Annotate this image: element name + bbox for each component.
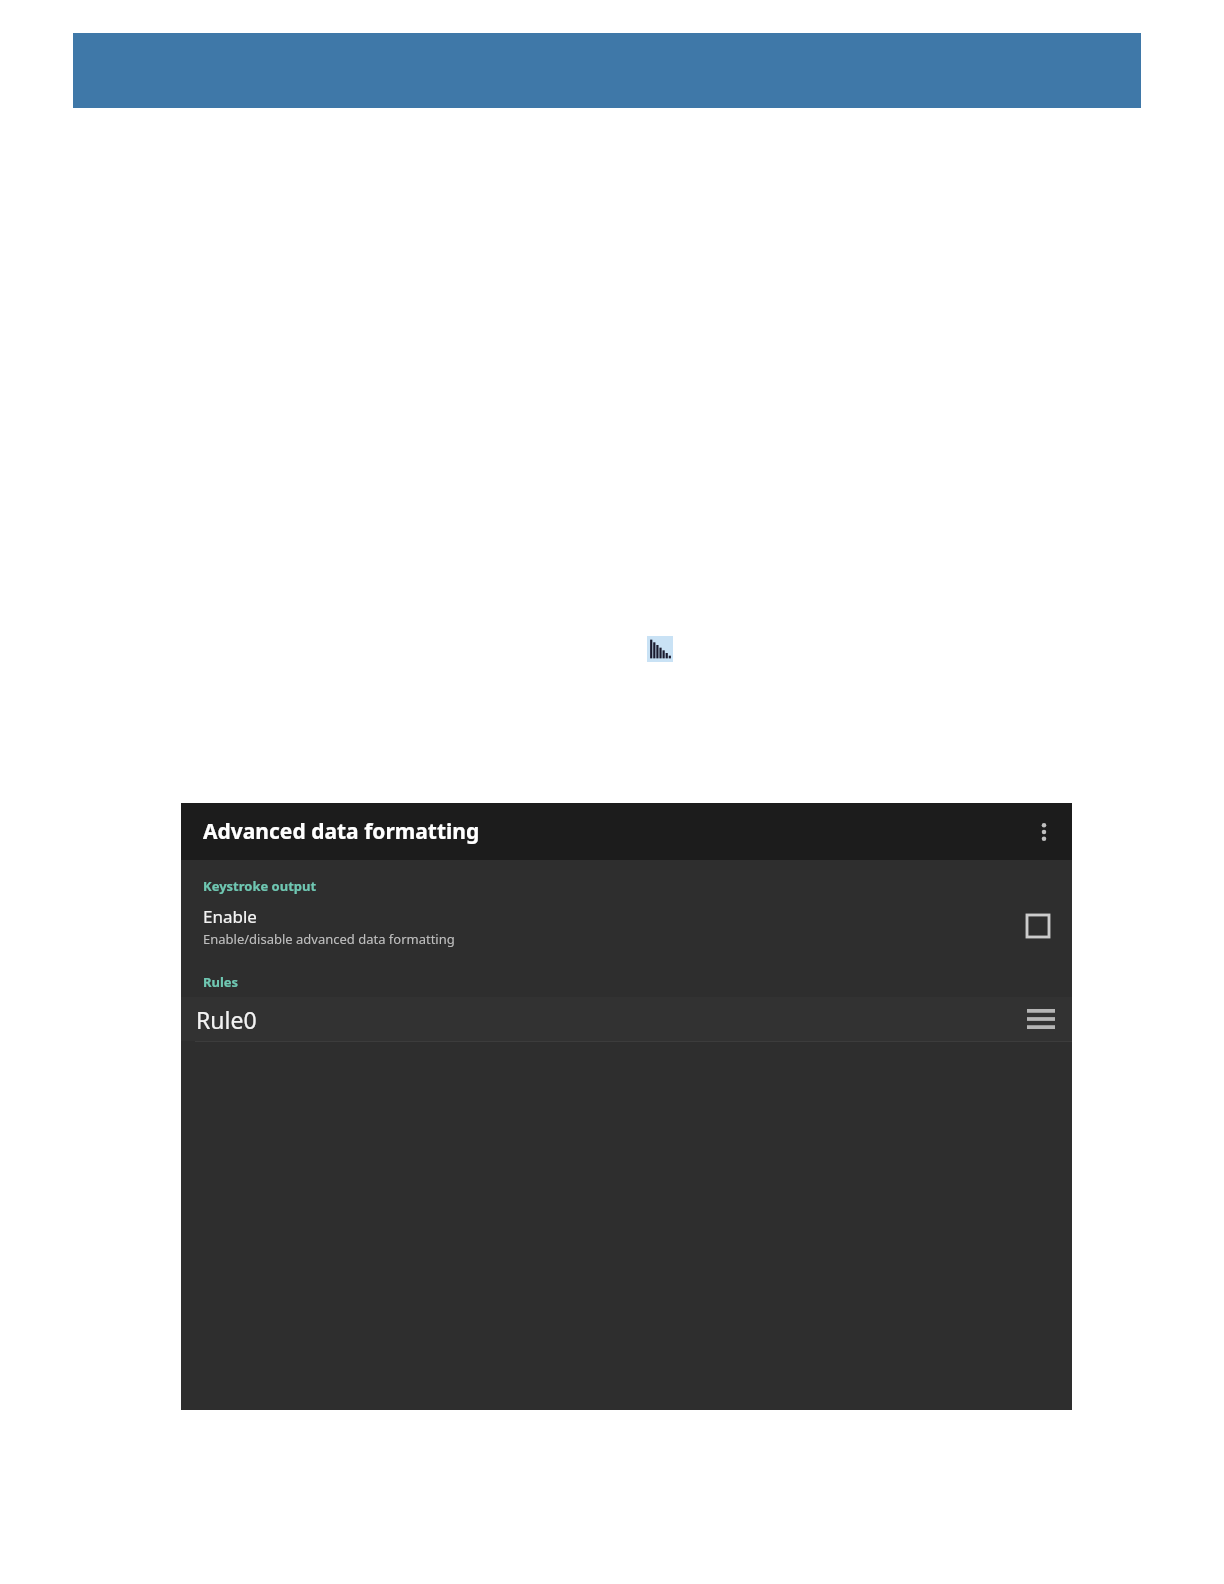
button[interactable]: Enable checkbox [1010, 898, 1066, 954]
staticText: Rule0 [196, 1004, 257, 1035]
staticText: Keystroke output [203, 877, 317, 895]
button[interactable]: Reorder rule [1016, 997, 1066, 1041]
button[interactable]: More options [1016, 804, 1072, 860]
button[interactable]: Rule0 [181, 997, 1072, 1041]
staticText: Advanced data formatting [203, 817, 480, 846]
button[interactable]: Enable [181, 895, 1072, 957]
staticText: Enable/disable advanced data formatting [203, 930, 455, 948]
staticText: Enable [203, 905, 257, 928]
staticText: Rules [203, 973, 239, 991]
